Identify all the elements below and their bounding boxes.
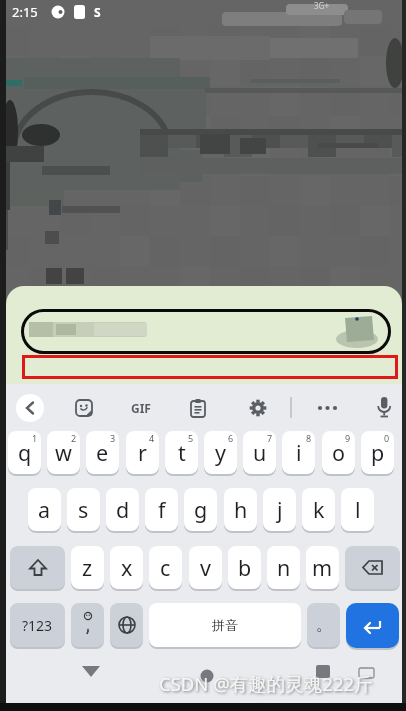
staticText: j: [277, 495, 283, 524]
button[interactable]: e: [86, 431, 119, 474]
button[interactable]: [71, 603, 104, 647]
staticText: w: [55, 438, 72, 467]
staticText: h: [234, 495, 248, 524]
button[interactable]: GIF: [126, 400, 156, 416]
button[interactable]: a: [28, 488, 61, 531]
staticText: i: [296, 438, 302, 467]
button[interactable]: [110, 603, 143, 647]
button[interactable]: x: [110, 546, 143, 589]
staticText: g: [194, 495, 208, 524]
button[interactable]: [16, 394, 44, 422]
button[interactable]: f: [145, 488, 178, 531]
button[interactable]: [21, 309, 391, 354]
staticText: 9: [345, 432, 351, 444]
staticText: 拼音: [212, 617, 238, 633]
staticText: f: [158, 495, 166, 524]
staticText: 0: [384, 432, 390, 444]
staticText: a: [38, 495, 51, 524]
staticText: c: [160, 553, 171, 582]
button[interactable]: [249, 399, 267, 417]
staticText: v: [200, 553, 211, 582]
button[interactable]: 。: [307, 603, 340, 647]
staticText: ?123: [22, 616, 53, 635]
button[interactable]: m: [306, 546, 339, 589]
button[interactable]: n: [267, 546, 300, 589]
button[interactable]: p: [361, 431, 394, 474]
button[interactable]: c: [149, 546, 182, 589]
staticText: d: [116, 495, 130, 524]
button[interactable]: l: [341, 488, 374, 531]
button[interactable]: [375, 396, 393, 420]
staticText: k: [313, 495, 325, 524]
staticText: 2: [71, 432, 77, 444]
staticText: S: [94, 4, 101, 20]
button[interactable]: j: [263, 488, 296, 531]
button[interactable]: k: [302, 488, 335, 531]
button[interactable]: s: [67, 488, 100, 531]
button[interactable]: ?123: [10, 603, 65, 647]
button[interactable]: q: [8, 431, 41, 474]
staticText: q: [18, 438, 32, 467]
staticText: GIF: [131, 400, 151, 416]
button[interactable]: [75, 399, 93, 417]
staticText: e: [96, 438, 109, 467]
button[interactable]: y: [204, 431, 237, 474]
button[interactable]: [60, 655, 120, 700]
staticText: p: [371, 438, 385, 467]
staticText: u: [253, 438, 267, 467]
button[interactable]: b: [228, 546, 261, 589]
staticText: z: [82, 553, 93, 582]
staticText: x: [121, 553, 133, 582]
staticText: r: [138, 438, 147, 467]
staticText: l: [355, 495, 361, 524]
button[interactable]: [346, 603, 399, 648]
button[interactable]: t: [165, 431, 198, 474]
staticText: n: [277, 553, 291, 582]
staticText: 。: [316, 615, 332, 635]
button[interactable]: v: [189, 546, 222, 589]
staticText: b: [238, 553, 252, 582]
staticText: o: [332, 438, 346, 467]
button[interactable]: o: [322, 431, 355, 474]
staticText: 1: [32, 432, 38, 444]
button[interactable]: [180, 655, 240, 700]
staticText: 4: [149, 432, 155, 444]
button[interactable]: g: [184, 488, 217, 531]
button[interactable]: [189, 398, 207, 418]
button[interactable]: i: [282, 431, 315, 474]
button[interactable]: h: [224, 488, 257, 531]
button[interactable]: [292, 655, 352, 700]
staticText: t: [178, 438, 186, 467]
staticText: 3: [110, 432, 116, 444]
button[interactable]: d: [106, 488, 139, 531]
button[interactable]: r: [126, 431, 159, 474]
button[interactable]: [345, 546, 400, 589]
staticText: 8: [306, 432, 312, 444]
button[interactable]: 拼音: [149, 603, 301, 647]
staticText: 3G+: [314, 0, 329, 11]
button[interactable]: [10, 546, 65, 589]
button[interactable]: u: [243, 431, 276, 474]
staticText: CSDN @有趣的灵魂222斤: [159, 671, 373, 696]
staticText: 5: [188, 432, 194, 444]
staticText: 6: [228, 432, 234, 444]
staticText: 2:15: [12, 3, 38, 21]
button[interactable]: w: [47, 431, 80, 474]
staticText: 7: [267, 432, 273, 444]
staticText: s: [78, 495, 89, 524]
button[interactable]: z: [71, 546, 104, 589]
staticText: m: [312, 553, 333, 582]
staticText: y: [215, 438, 226, 467]
